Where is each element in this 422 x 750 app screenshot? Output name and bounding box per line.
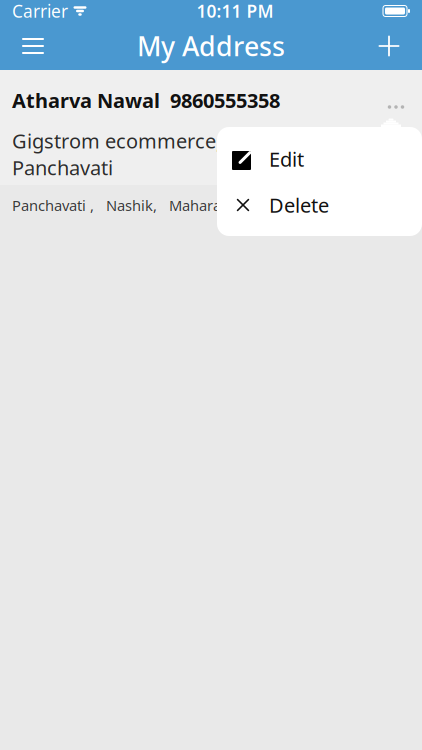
button[interactable]: Menu: [10, 22, 56, 70]
staticText: Carrier: [12, 0, 68, 22]
staticText: Atharva Nawal: [12, 87, 160, 114]
button[interactable]: Add address: [366, 22, 412, 70]
staticText: Delete: [269, 192, 329, 218]
staticText: 9860555358: [170, 87, 280, 114]
staticText: 10:11 PM: [196, 0, 273, 22]
button[interactable]: More options: [374, 90, 418, 124]
staticText: Edit: [269, 146, 304, 172]
button[interactable]: Edit: [217, 136, 422, 182]
staticText: Gigstrom ecommerce, Lamkhada mala, Panch…: [12, 128, 379, 181]
staticText: My Address: [137, 28, 285, 64]
staticText: Panchavati , Nashik, Maharashtra, 4: [12, 196, 280, 215]
button[interactable]: Delete: [217, 182, 422, 228]
